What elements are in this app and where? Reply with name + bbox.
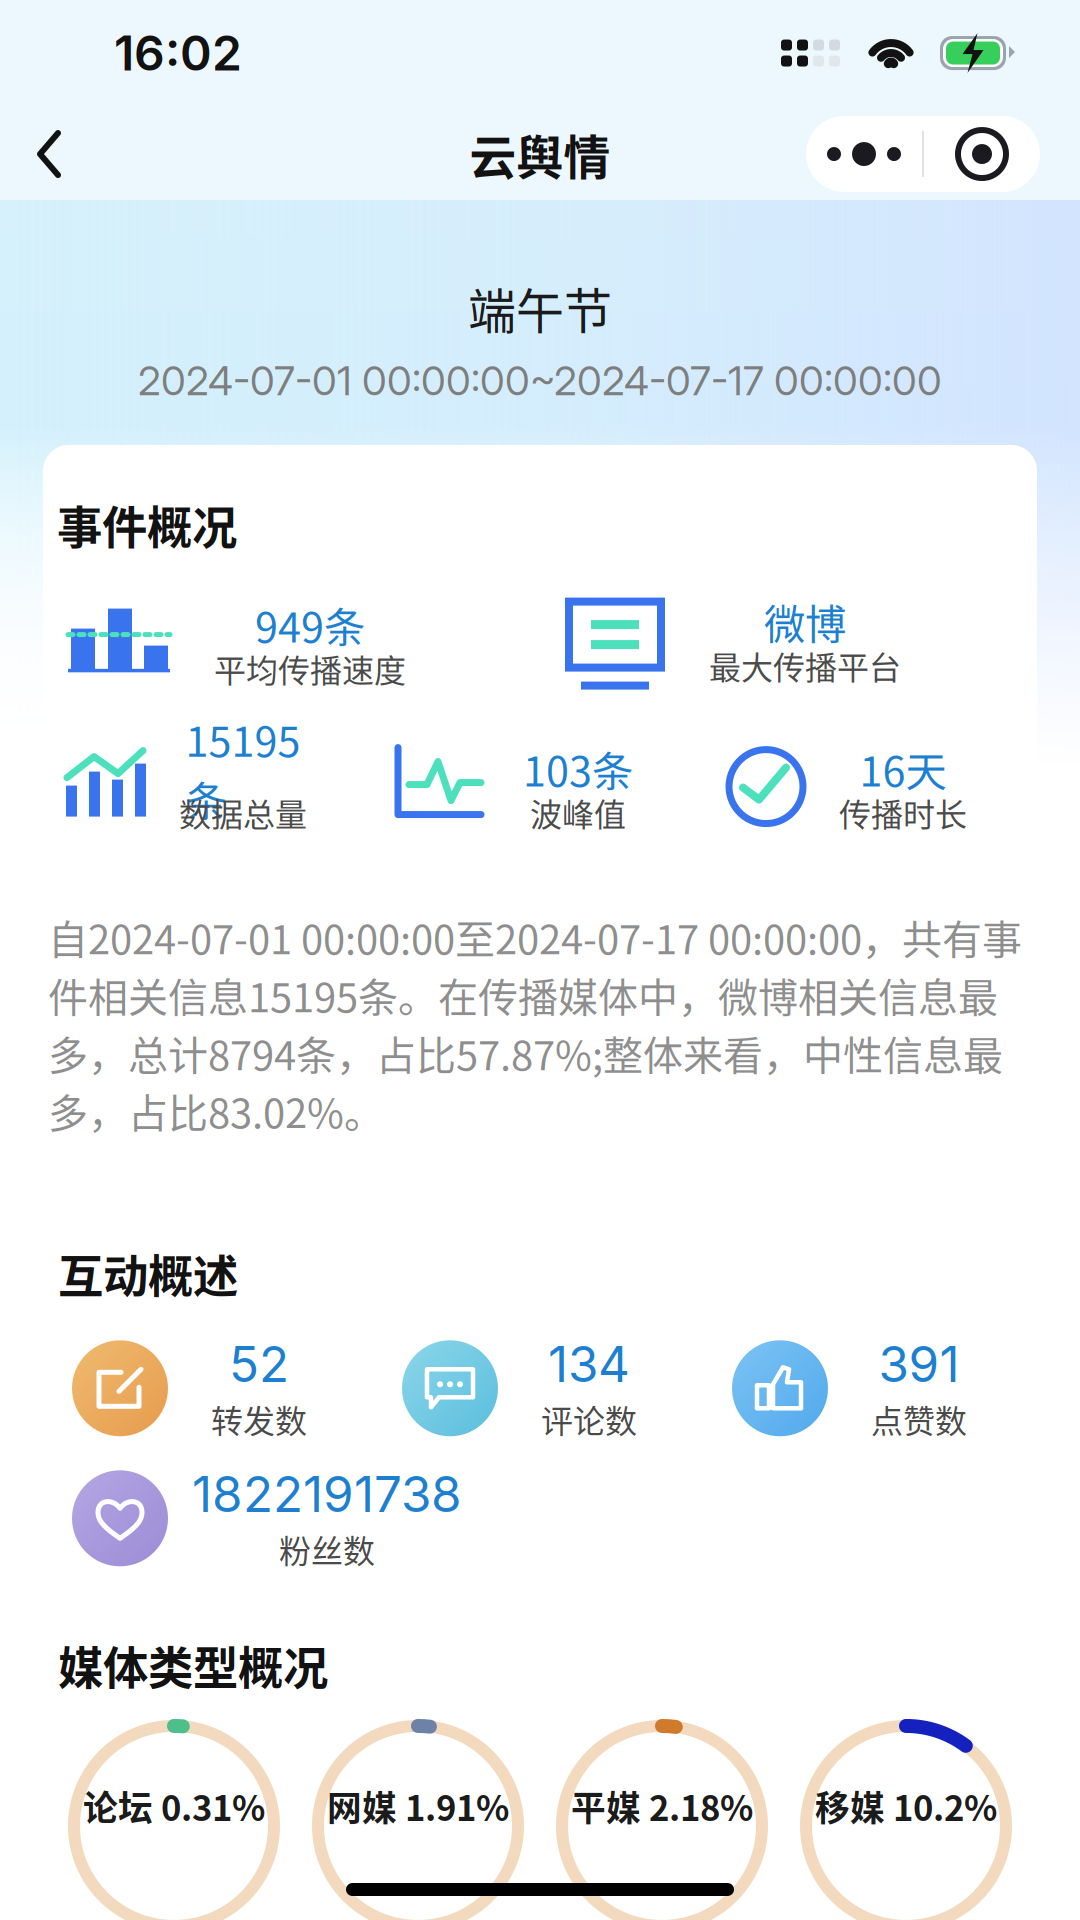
staticText: 391 (878, 1334, 959, 1394)
staticText: 最大传播平台 (709, 642, 901, 689)
staticText: 波峰值 (530, 789, 626, 836)
staticText: 端午节 (468, 273, 612, 342)
staticText: 数据总量 (179, 789, 307, 836)
button[interactable]: Close (924, 116, 1040, 192)
staticText: 论坛 0.31% (83, 1781, 265, 1831)
staticText: 平均传播速度 (214, 645, 406, 692)
button[interactable]: More (806, 116, 922, 192)
staticText: 事件概况 (57, 492, 237, 557)
staticText: 微博 (764, 592, 846, 652)
staticText: 15195条 (185, 709, 300, 828)
staticText: 互动概述 (58, 1241, 238, 1306)
staticText: 1822191738 (192, 1464, 462, 1524)
staticText: 103条 (523, 739, 633, 799)
staticText: 52 (229, 1334, 289, 1394)
staticText: 媒体类型概况 (58, 1632, 328, 1698)
staticText: 134 (548, 1334, 630, 1394)
staticText: 网媒 1.91% (327, 1781, 509, 1831)
staticText: 自2024-07-01 00:00:00至2024-07-17 00:00:00… (48, 908, 1022, 1140)
staticText: 点赞数 (871, 1396, 967, 1442)
staticText: 评论数 (541, 1396, 637, 1442)
staticText: 转发数 (211, 1396, 307, 1442)
staticText: 平媒 2.18% (571, 1781, 753, 1831)
staticText: 传播时长 (839, 789, 967, 836)
staticText: 移媒 10.2% (815, 1781, 997, 1831)
staticText: 粉丝数 (279, 1526, 375, 1572)
staticText: 949条 (255, 595, 365, 655)
staticText: 云舆情 (469, 120, 610, 188)
button[interactable]: Back (0, 113, 98, 195)
staticText: 16天 (859, 739, 946, 799)
staticText: 2024-07-01 00:00:00~2024-07-17 00:00:00 (138, 356, 942, 405)
staticText: 16:02 (114, 24, 242, 82)
